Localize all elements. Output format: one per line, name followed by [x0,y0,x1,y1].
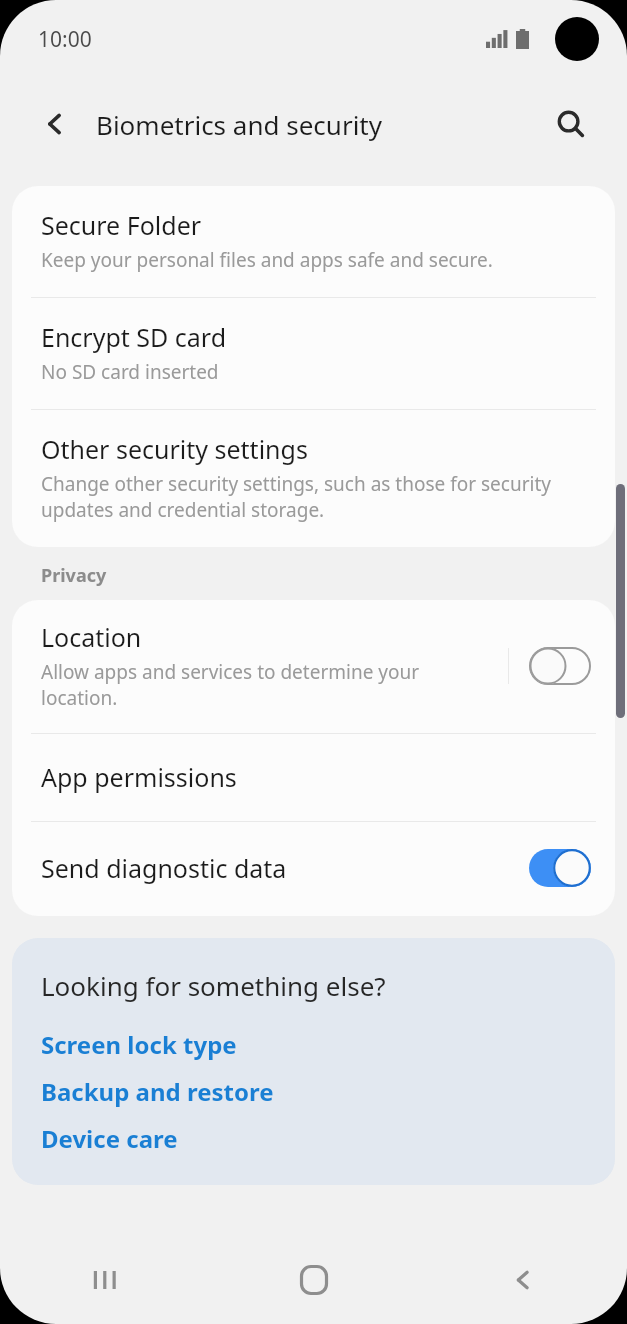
button[interactable]: Off [523,640,597,692]
staticText: Backup and restore [41,1075,274,1108]
staticText: App permissions [41,760,237,794]
button[interactable]: App permissions [12,734,615,821]
button[interactable]: Screen lock type [41,1028,237,1061]
button[interactable]: Home [209,1236,418,1324]
staticText: Keep your personal files and apps safe a… [41,247,493,273]
staticText: 10:00 [38,25,92,54]
button[interactable]: Encrypt SD card [12,298,615,409]
staticText: Device care [41,1122,178,1155]
staticText: Other security settings [41,432,308,466]
staticText: Change other security settings, such as … [41,471,586,523]
button[interactable]: On [523,842,597,894]
button[interactable]: Search [543,96,599,152]
staticText: No SD card inserted [41,359,219,385]
button[interactable]: Back [418,1236,627,1324]
staticText: Secure Folder [41,208,202,242]
staticText: Privacy [41,563,107,588]
button[interactable]: Recents [0,1236,209,1324]
staticText: Looking for something else? [41,968,386,1003]
button[interactable]: Secure Folder [12,186,615,297]
button[interactable]: Send diagnostic data [12,822,615,916]
button[interactable]: Back [26,95,84,153]
staticText: Screen lock type [41,1028,237,1061]
staticText: Allow apps and services to determine you… [41,659,484,711]
staticText: Location [41,620,142,654]
staticText: Biometrics and security [96,107,383,142]
button[interactable]: Other security settings [12,410,615,547]
button[interactable]: Device care [41,1122,178,1155]
button[interactable]: Backup and restore [41,1075,274,1108]
staticText: Encrypt SD card [41,320,227,354]
button[interactable]: Location [12,600,615,733]
staticText: Send diagnostic data [41,851,287,885]
